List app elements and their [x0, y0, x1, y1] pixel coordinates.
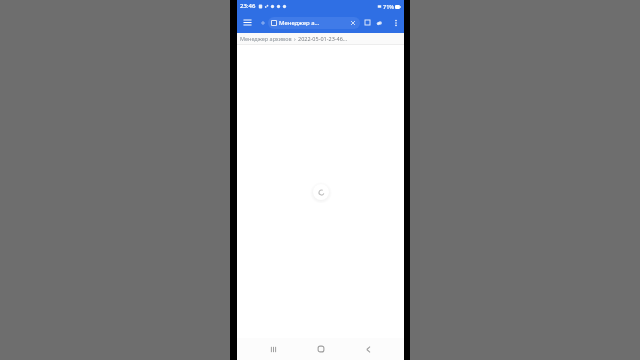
button[interactable]: Back [357, 338, 379, 360]
button[interactable]: Менеджер а… [268, 17, 360, 29]
staticText: 2022-05-01-23-46… [298, 35, 348, 42]
button[interactable]: Downloads [373, 17, 384, 28]
staticText: › [294, 35, 296, 42]
button[interactable]: Recent apps [262, 338, 284, 360]
staticText: Менеджер архивов [240, 35, 292, 42]
button[interactable]: Close tab [349, 19, 357, 27]
button[interactable]: Menu [239, 14, 256, 31]
button[interactable]: Менеджер архивов [237, 33, 404, 44]
staticText: 71% [383, 3, 394, 10]
button[interactable]: More options [388, 15, 403, 30]
staticText: Менеджер а… [279, 19, 348, 27]
button[interactable]: Home [310, 338, 332, 360]
button[interactable]: Tabs [362, 17, 373, 28]
staticText: 23:46 [240, 2, 256, 10]
